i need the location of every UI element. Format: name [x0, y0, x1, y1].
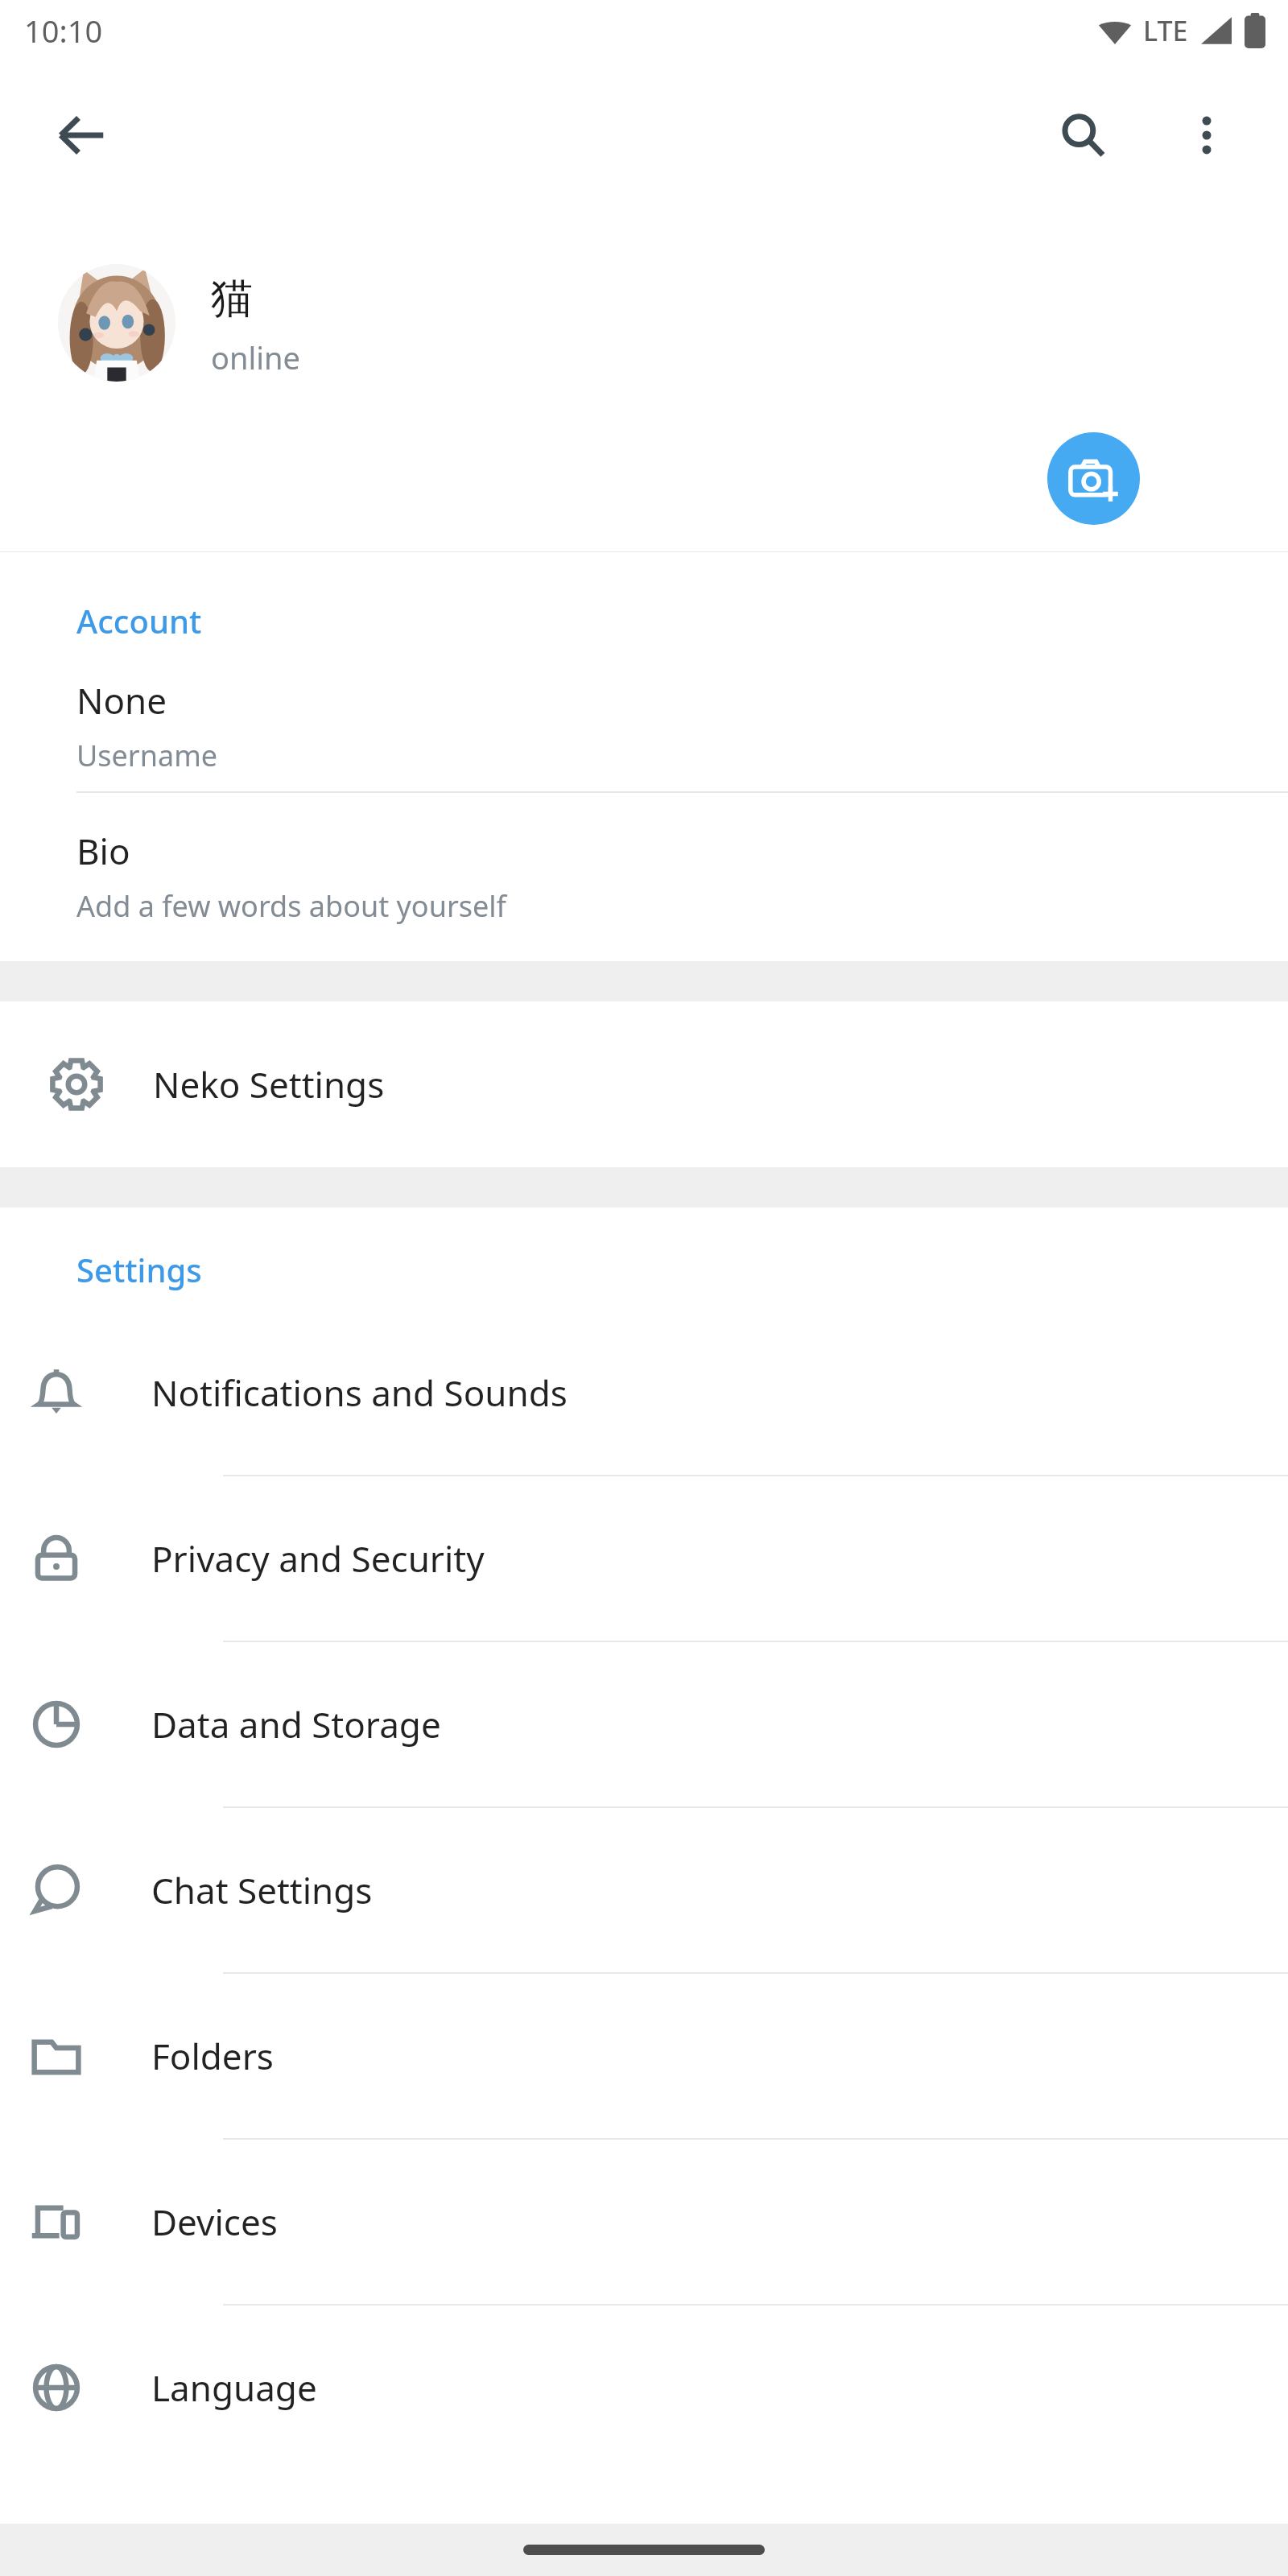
staticText: Folders [151, 2032, 274, 2080]
staticText: Language [151, 2363, 317, 2412]
button[interactable]: Folders [0, 1974, 1288, 2138]
button[interactable]: Privacy and Security [0, 1476, 1288, 1641]
staticText: Privacy and Security [151, 1534, 485, 1583]
staticText: Data and Storage [151, 1700, 441, 1748]
button[interactable]: Search [1038, 91, 1127, 180]
staticText: Chat Settings [151, 1866, 373, 1914]
staticText: None [76, 676, 167, 724]
button[interactable]: Language [0, 2306, 1288, 2470]
button[interactable]: Neko Settings [0, 1001, 1288, 1167]
button[interactable]: Bio [0, 793, 1288, 942]
staticText: Devices [151, 2198, 278, 2246]
staticText: 猫 [211, 272, 253, 325]
staticText: Notifications and Sounds [151, 1368, 568, 1417]
button[interactable]: 猫 [0, 209, 1288, 551]
button[interactable]: Set profile photo [1047, 432, 1140, 525]
button[interactable]: Notifications and Sounds [0, 1311, 1288, 1475]
button[interactable]: More options [1162, 91, 1251, 180]
staticText: Account [76, 599, 202, 642]
button[interactable]: None [0, 642, 1288, 791]
button[interactable]: Devices [0, 2140, 1288, 2304]
staticText: Username [76, 736, 218, 775]
staticText: 10:10 [24, 10, 103, 52]
staticText: Settings [76, 1248, 202, 1291]
staticText: LTE [1143, 12, 1188, 49]
button[interactable]: Back [37, 91, 126, 180]
staticText: Neko Settings [153, 1060, 385, 1108]
staticText: Add a few words about yourself [76, 886, 506, 926]
button[interactable]: Chat Settings [0, 1808, 1288, 1972]
button[interactable]: Data and Storage [0, 1642, 1288, 1806]
staticText: Bio [76, 827, 130, 875]
staticText: online [211, 336, 300, 378]
